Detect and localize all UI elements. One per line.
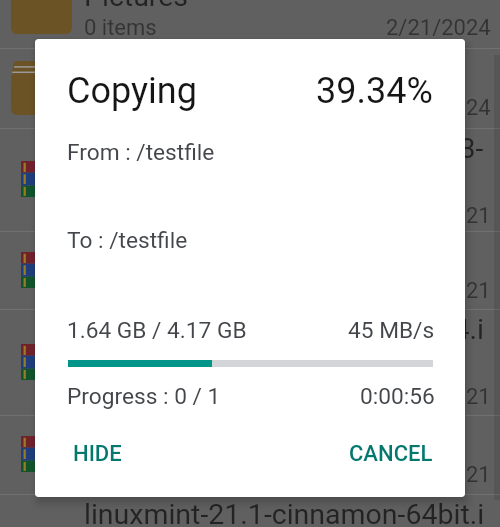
staticText: linuxmint-21.1-cinnamon-6464.i [84,313,484,346]
staticText: Pictures [84,0,189,13]
staticText: 3/17/2021 [386,462,491,488]
staticText: linuxmint-21.1-cinnamon-x64-3- [84,132,484,165]
staticText: HIDE [73,441,122,467]
staticText: 2/21/2024 [386,15,491,41]
staticText: 1.64 GB / 4.17 GB [67,317,247,344]
staticText: Documents [84,60,230,93]
button[interactable]: linuxmint-19.3.iso [0,415,500,494]
staticText: 2/21/2024 [386,95,491,121]
button[interactable]: linuxmint-20.3.iso [0,231,500,309]
staticText: 39.34% [316,70,433,112]
staticText: linuxmint-21.1-cinnamon-64bit.i [84,498,485,527]
staticText: linuxmint-20.3.iso [84,243,310,276]
staticText: To : /testfile [67,227,188,254]
staticText: Copying [67,70,197,112]
button[interactable]: HIDE [55,430,140,478]
staticText: Progress : 0 / 1 [67,383,221,410]
button[interactable]: Pictures [0,0,500,48]
staticText: 45 MB/s [348,317,435,344]
button[interactable]: linuxmint-21.1-cinnamon-6464.i [0,309,500,415]
staticText: From : /testfile [67,139,215,166]
staticText: 0 items [84,15,157,41]
staticText: so [84,346,115,379]
staticText: 3/17/2021 [386,384,491,410]
staticText: 2.1 GB [84,384,149,410]
staticText: 3 items [84,95,157,121]
staticText: linuxmint-19.3.iso [84,427,310,460]
button[interactable]: Documents [0,48,500,128]
staticText: 3/17/2021 [386,278,491,304]
staticText: 0:00:56 [360,383,435,410]
staticText: CANCEL [349,441,433,467]
button[interactable]: linuxmint-21.1-cinnamon-x64-3- [0,128,500,231]
button[interactable]: linuxmint-21.1-cinnamon-64bit.i [0,494,500,527]
button[interactable]: CANCEL [335,430,447,478]
staticText: 3/17/2021 [386,203,491,229]
